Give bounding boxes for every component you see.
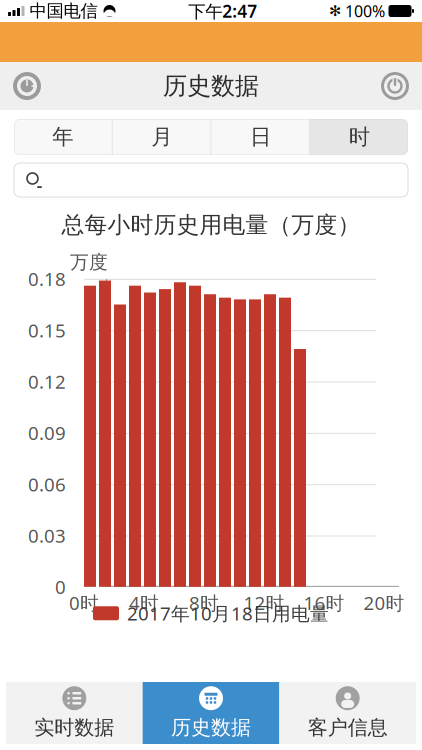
staticText: 0时: [69, 590, 99, 615]
staticText: 2017年10月18日用电量: [127, 601, 329, 626]
button[interactable]: 历史数据: [143, 682, 279, 744]
staticText: 0.03: [28, 523, 66, 548]
staticText: 历史数据: [171, 715, 251, 740]
staticText: 时: [349, 124, 370, 150]
staticText: 20时: [363, 590, 404, 615]
button[interactable]: 月: [113, 119, 211, 155]
staticText: 0.12: [28, 369, 66, 394]
button[interactable]: 实时数据: [6, 682, 143, 744]
staticText: 月: [151, 124, 172, 150]
staticText: 100%: [345, 0, 385, 22]
button[interactable]: 历史: [4, 63, 50, 109]
staticText: 实时数据: [34, 715, 114, 740]
button[interactable]: 年: [14, 119, 112, 155]
staticText: 4时: [129, 590, 159, 615]
staticText: 16时: [303, 590, 344, 615]
staticText: 客户信息: [308, 715, 388, 740]
button[interactable]: 客户信息: [279, 682, 416, 744]
staticText: 0.06: [28, 472, 66, 497]
staticText: 历史数据: [163, 71, 259, 101]
staticText: 0.18: [28, 266, 66, 291]
staticText: 12时: [243, 590, 284, 615]
staticText: 下午2:47: [188, 0, 257, 22]
staticText: 0.15: [28, 318, 66, 343]
staticText: 0: [55, 574, 66, 599]
staticText: 总每小时历史用电量（万度）: [61, 211, 360, 239]
staticText: 0.09: [28, 420, 66, 445]
button[interactable]: 日: [211, 119, 309, 155]
staticText: 中国电信: [29, 0, 97, 22]
button[interactable]: 搜索: [14, 163, 408, 197]
button[interactable]: 时: [310, 119, 408, 155]
button[interactable]: 退出: [372, 63, 418, 109]
staticText: 年: [52, 124, 73, 150]
staticText: 万度: [70, 251, 108, 274]
staticText: 日: [250, 124, 271, 150]
staticText: ✻: [329, 3, 341, 19]
staticText: 8时: [189, 590, 219, 615]
